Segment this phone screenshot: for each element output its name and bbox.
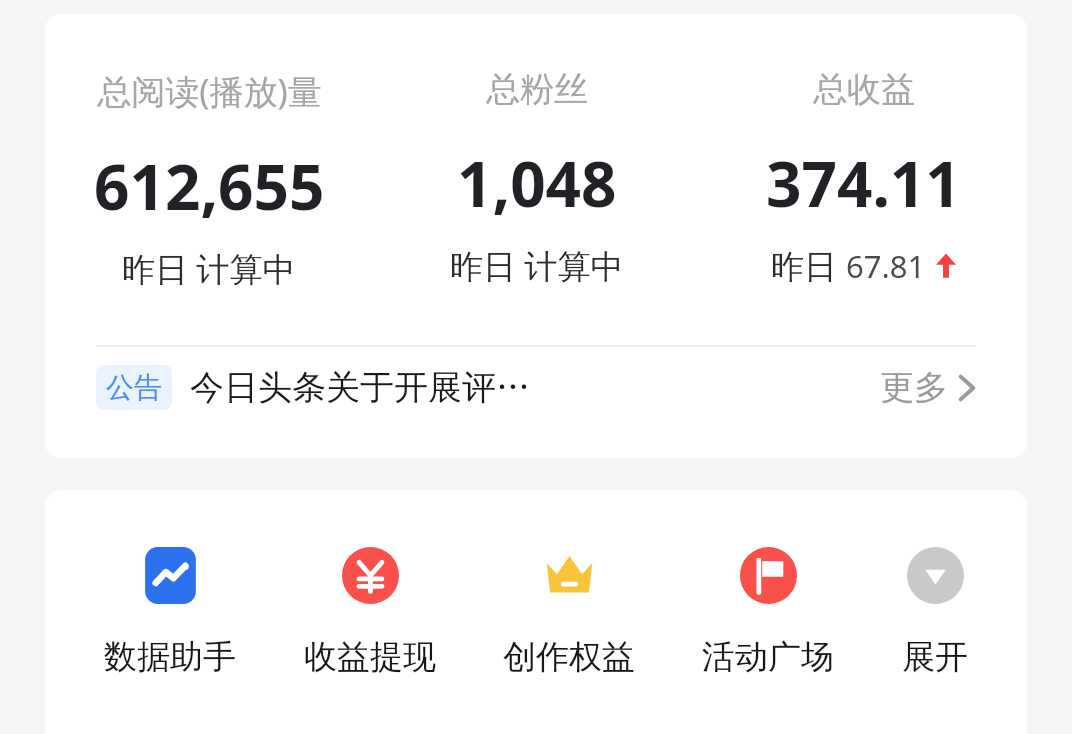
staticText: 收益提现 (304, 636, 436, 678)
staticText: 总粉丝 (486, 68, 588, 111)
staticText: 612,655 (94, 144, 325, 228)
staticText: 昨日 计算中 (122, 246, 296, 291)
staticText: 总收益 (813, 68, 915, 111)
staticText: 展开 (902, 636, 968, 678)
button[interactable]: 活动广场 (694, 547, 842, 678)
staticText: 数据助手 (104, 636, 236, 678)
button[interactable]: 展开 (894, 547, 976, 678)
staticText: 总阅读(播放)量 (97, 68, 322, 114)
button[interactable]: 公告 (45, 347, 1027, 427)
button[interactable]: 创作权益 (495, 547, 643, 678)
button[interactable]: 收益提现 (296, 547, 444, 678)
staticText: 今日头条关于开展评论专项整治公告... (190, 366, 535, 409)
button[interactable]: 总收益 (700, 68, 1027, 288)
staticText: 昨日 计算中 (450, 243, 624, 288)
button[interactable]: 总粉丝 (373, 68, 700, 288)
staticText: 更多 (880, 366, 948, 409)
staticText: 活动广场 (702, 636, 834, 678)
staticText: 1,048 (457, 141, 617, 225)
staticText: 67.81 (846, 245, 926, 287)
button[interactable]: 数据助手 (96, 547, 244, 678)
staticText: 创作权益 (503, 636, 635, 678)
button[interactable]: 总阅读(播放)量 (45, 68, 373, 291)
button[interactable]: 更多 (880, 366, 976, 409)
staticText: 公告 (106, 370, 162, 405)
staticText: 374.11 (766, 141, 961, 225)
staticText: 昨日 (771, 243, 846, 288)
